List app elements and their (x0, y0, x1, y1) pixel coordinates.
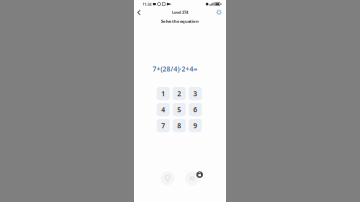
staticText: 6 (193, 105, 197, 114)
button[interactable]: 3 (189, 87, 202, 100)
staticText: 8 (177, 121, 181, 130)
button[interactable]: 6 (189, 103, 202, 116)
button[interactable]: Back (133, 7, 144, 18)
staticText: 5 (177, 105, 181, 114)
button[interactable]: 5 (173, 103, 186, 116)
staticText: 11:34 (142, 1, 151, 7)
button[interactable]: 4 (157, 103, 170, 116)
button[interactable]: Settings (213, 7, 224, 18)
staticText: 7+(28/4)·2+4= (152, 65, 197, 73)
staticText: 9 (193, 121, 197, 130)
button[interactable]: Hint (161, 171, 174, 185)
staticText: Level 274 (172, 10, 188, 15)
staticText: 1 (161, 89, 165, 98)
staticText: Solve the equation (161, 19, 199, 24)
button[interactable]: 2 (173, 87, 186, 100)
button[interactable]: Skip level (185, 171, 199, 185)
staticText: 4 (161, 105, 165, 114)
staticText: 2 (177, 89, 181, 98)
staticText: 3 (193, 89, 197, 98)
button[interactable]: 7 (157, 119, 170, 132)
button[interactable]: 8 (173, 119, 186, 132)
button[interactable]: 1 (157, 87, 170, 100)
staticText: 7 (161, 121, 165, 130)
button[interactable]: 9 (189, 119, 202, 132)
